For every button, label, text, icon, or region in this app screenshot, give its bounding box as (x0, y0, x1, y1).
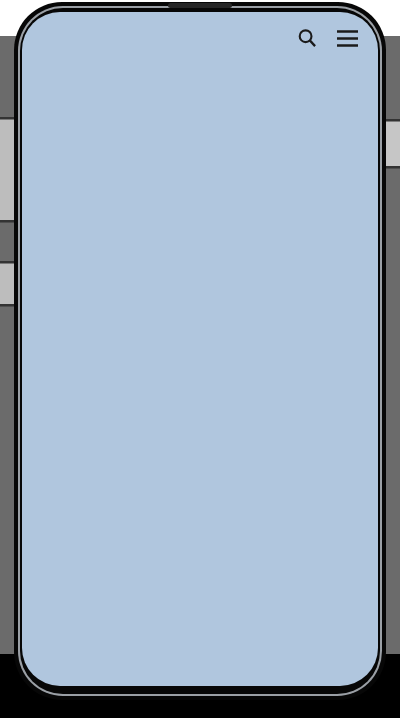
button[interactable]: Search (288, 19, 326, 57)
button[interactable]: Menu (328, 19, 366, 57)
